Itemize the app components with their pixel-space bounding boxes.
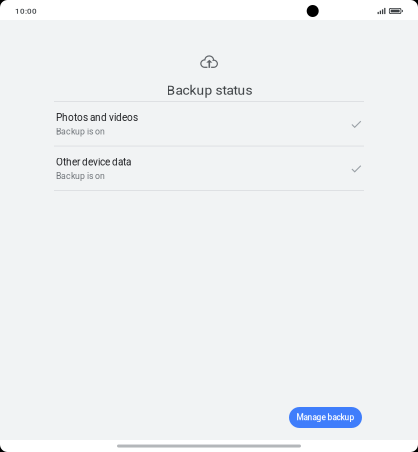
staticText: Backup is on (56, 171, 105, 181)
staticText: Other device data (56, 156, 131, 168)
button[interactable]: Photos and videos (54, 102, 364, 146)
staticText: Backup status (166, 82, 252, 98)
button[interactable]: Other device data (54, 146, 364, 191)
staticText: Backup is on (56, 126, 105, 137)
staticText: Photos and videos (56, 112, 138, 123)
button[interactable]: Manage backup (289, 407, 362, 428)
staticText: Manage backup (296, 413, 354, 422)
staticText: 10:00 (15, 6, 37, 16)
